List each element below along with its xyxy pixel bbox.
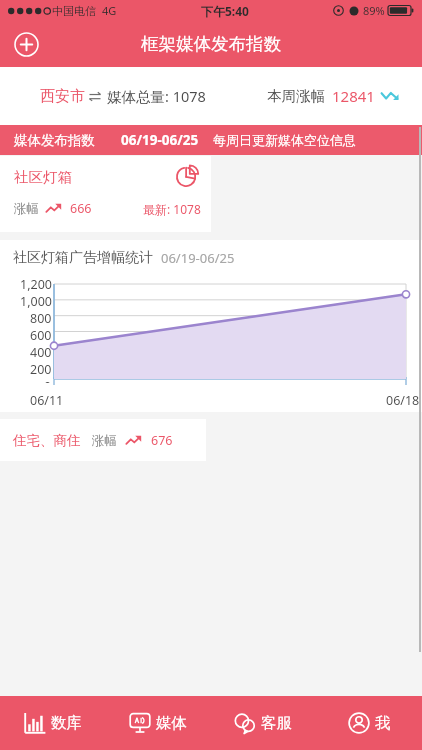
- staticText: 200: [30, 361, 52, 378]
- staticText: 600: [30, 327, 52, 344]
- staticText: 89%: [363, 3, 385, 18]
- staticText: 676: [151, 432, 173, 449]
- staticText: 涨幅: [14, 201, 39, 217]
- staticText: 框架媒体发布指数: [141, 33, 281, 55]
- button[interactable]: 住宅、商住: [0, 419, 206, 461]
- staticText: 社区灯箱广告增幅统计: [13, 249, 153, 267]
- staticText: 4G: [102, 3, 117, 18]
- button[interactable]: 社区灯箱: [0, 156, 211, 232]
- button[interactable]: 数库: [0, 696, 105, 750]
- staticText: 涨幅: [92, 433, 117, 449]
- button[interactable]: 客服: [210, 696, 316, 750]
- staticText: 下午5:40: [201, 3, 249, 19]
- staticText: 媒体发布指数: [14, 132, 95, 149]
- staticText: 我: [375, 713, 391, 733]
- button[interactable]: 西安市: [40, 87, 101, 106]
- staticText: 06/19-06/25: [121, 131, 199, 149]
- staticText: 06/18: [386, 392, 420, 409]
- staticText: 1,000: [20, 293, 52, 310]
- button[interactable]: Add: [10, 28, 42, 60]
- staticText: 客服: [261, 713, 292, 733]
- staticText: 每周日更新媒体空位信息: [213, 132, 356, 148]
- staticText: 中国电信: [52, 4, 96, 18]
- staticText: 西安市: [40, 87, 85, 106]
- staticText: 社区灯箱: [14, 168, 72, 186]
- button[interactable]: 我: [316, 696, 422, 750]
- staticText: 400: [30, 344, 52, 361]
- staticText: 住宅、商住: [13, 432, 81, 449]
- staticText: 媒体: [156, 713, 187, 733]
- staticText: 06/19-06/25: [161, 249, 235, 267]
- staticText: 666: [70, 200, 92, 217]
- staticText: 数库: [51, 713, 82, 733]
- staticText: 12841: [332, 86, 375, 106]
- staticText: 媒体总量: 1078: [107, 86, 206, 106]
- staticText: 最新: 1078: [143, 201, 201, 217]
- button[interactable]: 媒体: [105, 696, 210, 750]
- staticText: 0: [44, 378, 52, 383]
- staticText: 本周涨幅: [267, 87, 325, 105]
- staticText: 06/11: [30, 392, 64, 409]
- staticText: 1,200: [20, 276, 52, 293]
- staticText: 800: [30, 310, 52, 327]
